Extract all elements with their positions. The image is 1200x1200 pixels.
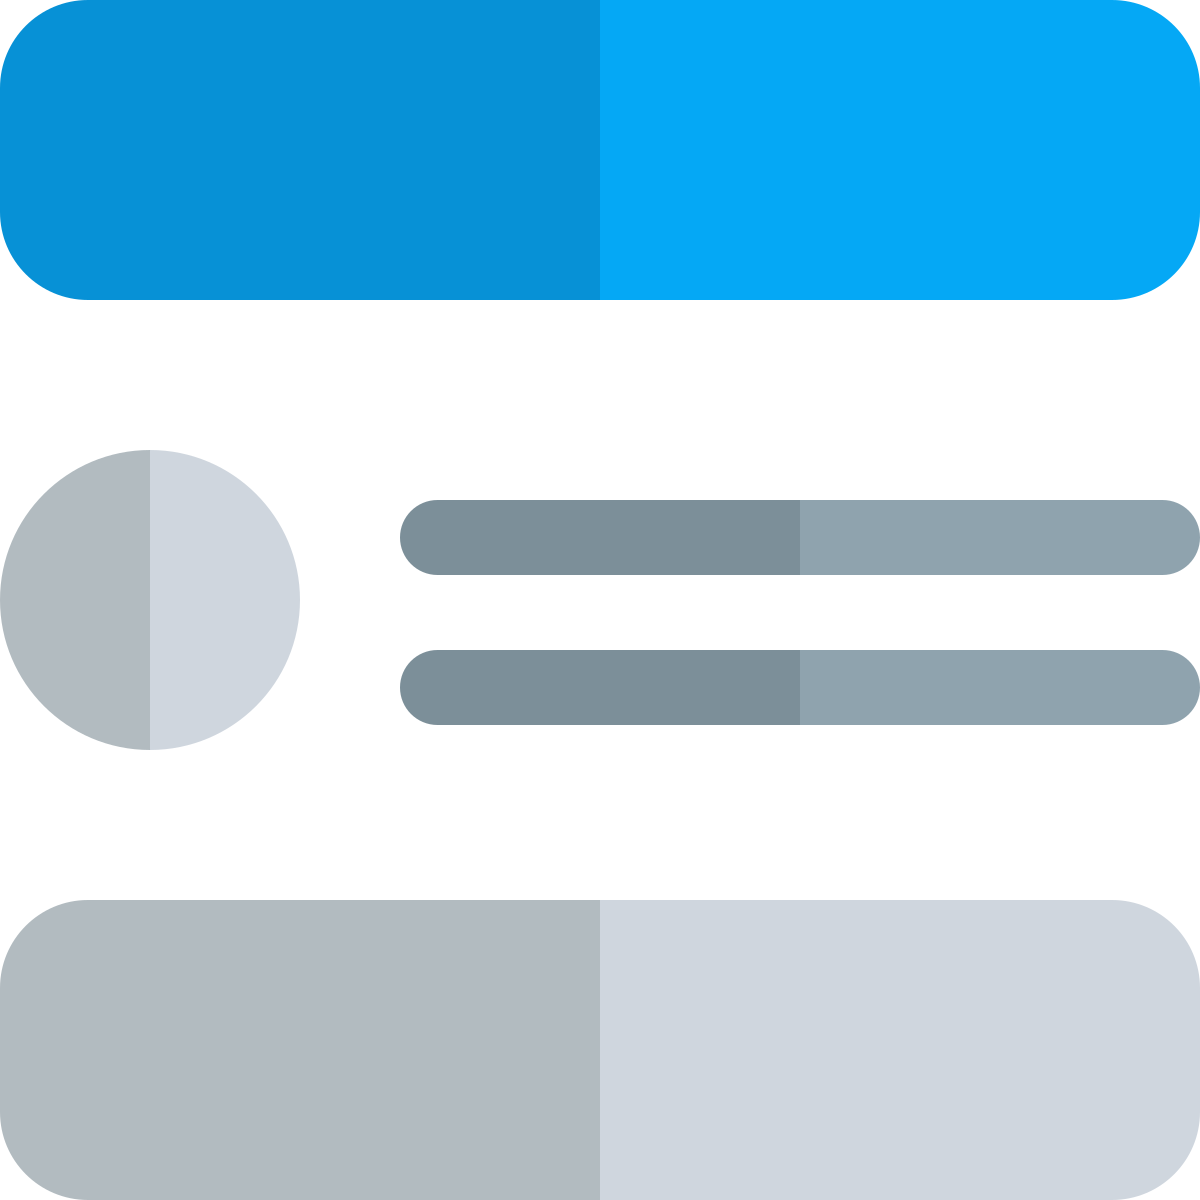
button[interactable]: Profile picture — [0, 450, 300, 750]
button[interactable]: Title placeholder — [400, 500, 1200, 575]
button[interactable]: Content card — [0, 900, 1200, 1200]
button[interactable]: Subtitle placeholder — [400, 650, 1200, 725]
button[interactable]: Featured banner — [0, 0, 1200, 300]
